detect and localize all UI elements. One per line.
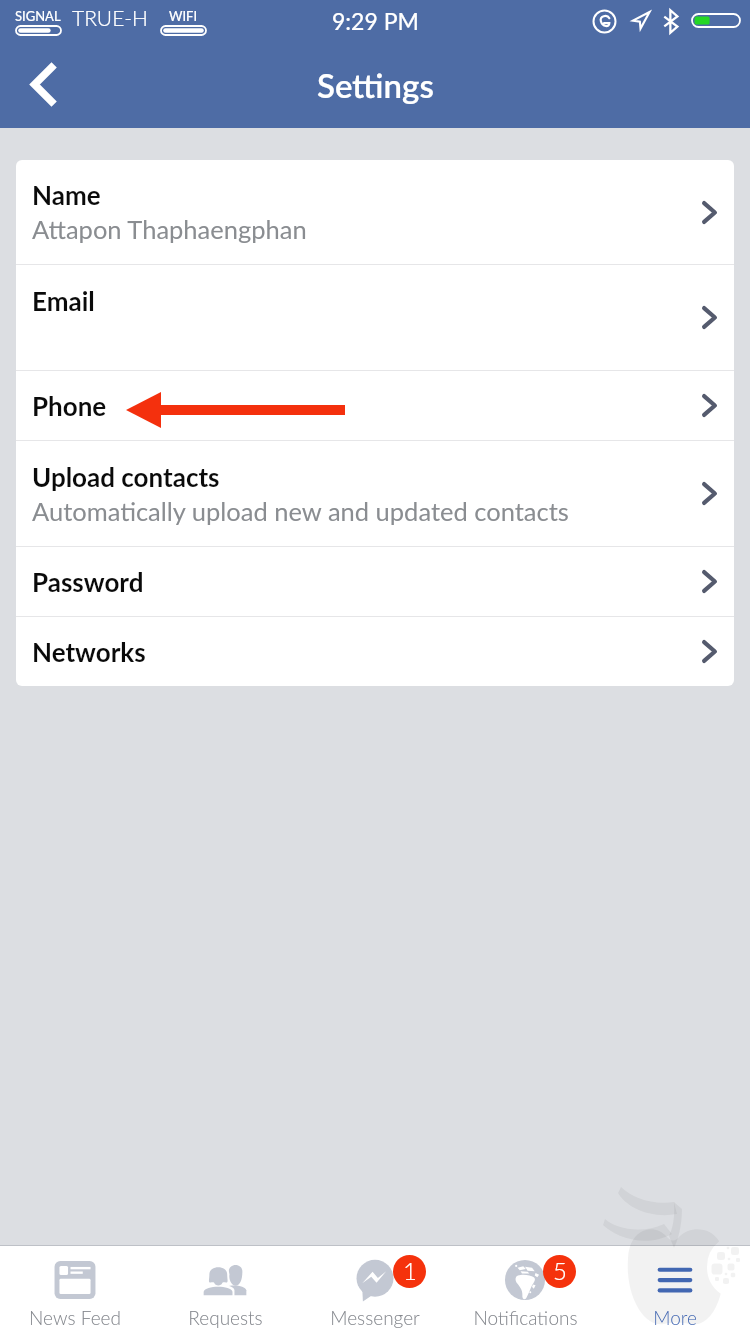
staticText: Upload contacts xyxy=(32,461,220,492)
staticText: 9:29 PM xyxy=(332,7,419,35)
button[interactable]: Phone xyxy=(16,371,734,440)
staticText: Phone xyxy=(32,390,107,421)
button[interactable]: Password xyxy=(16,547,734,616)
button[interactable]: Name xyxy=(16,160,734,264)
staticText: More xyxy=(653,1306,697,1329)
button[interactable]: 1 xyxy=(300,1246,450,1334)
button[interactable]: 5 xyxy=(450,1246,600,1334)
staticText: Attapon Thaphaengphan xyxy=(32,214,307,245)
staticText: Networks xyxy=(32,636,146,667)
button[interactable]: More xyxy=(600,1246,750,1334)
staticText: TRUE-H xyxy=(72,5,148,30)
staticText: 5 xyxy=(553,1256,567,1285)
staticText: Settings xyxy=(317,65,434,105)
button[interactable]: Upload contacts xyxy=(16,441,734,546)
staticText: 1 xyxy=(403,1256,417,1285)
staticText: Messenger xyxy=(330,1306,420,1329)
staticText: News Feed xyxy=(29,1306,121,1329)
staticText: Name xyxy=(32,179,101,210)
staticText: WIFI xyxy=(169,8,198,24)
button[interactable]: Back xyxy=(0,45,86,128)
button[interactable]: Networks xyxy=(16,617,734,686)
button[interactable]: Email xyxy=(16,265,734,370)
staticText: SIGNAL xyxy=(15,8,61,24)
staticText: Password xyxy=(32,566,144,597)
staticText: Email xyxy=(32,285,95,316)
staticText: Notifications xyxy=(473,1306,578,1329)
button[interactable]: News Feed xyxy=(0,1246,150,1334)
staticText: Requests xyxy=(188,1306,263,1329)
staticText: Automatically upload new and updated con… xyxy=(32,496,569,527)
button[interactable]: Requests xyxy=(150,1246,300,1334)
